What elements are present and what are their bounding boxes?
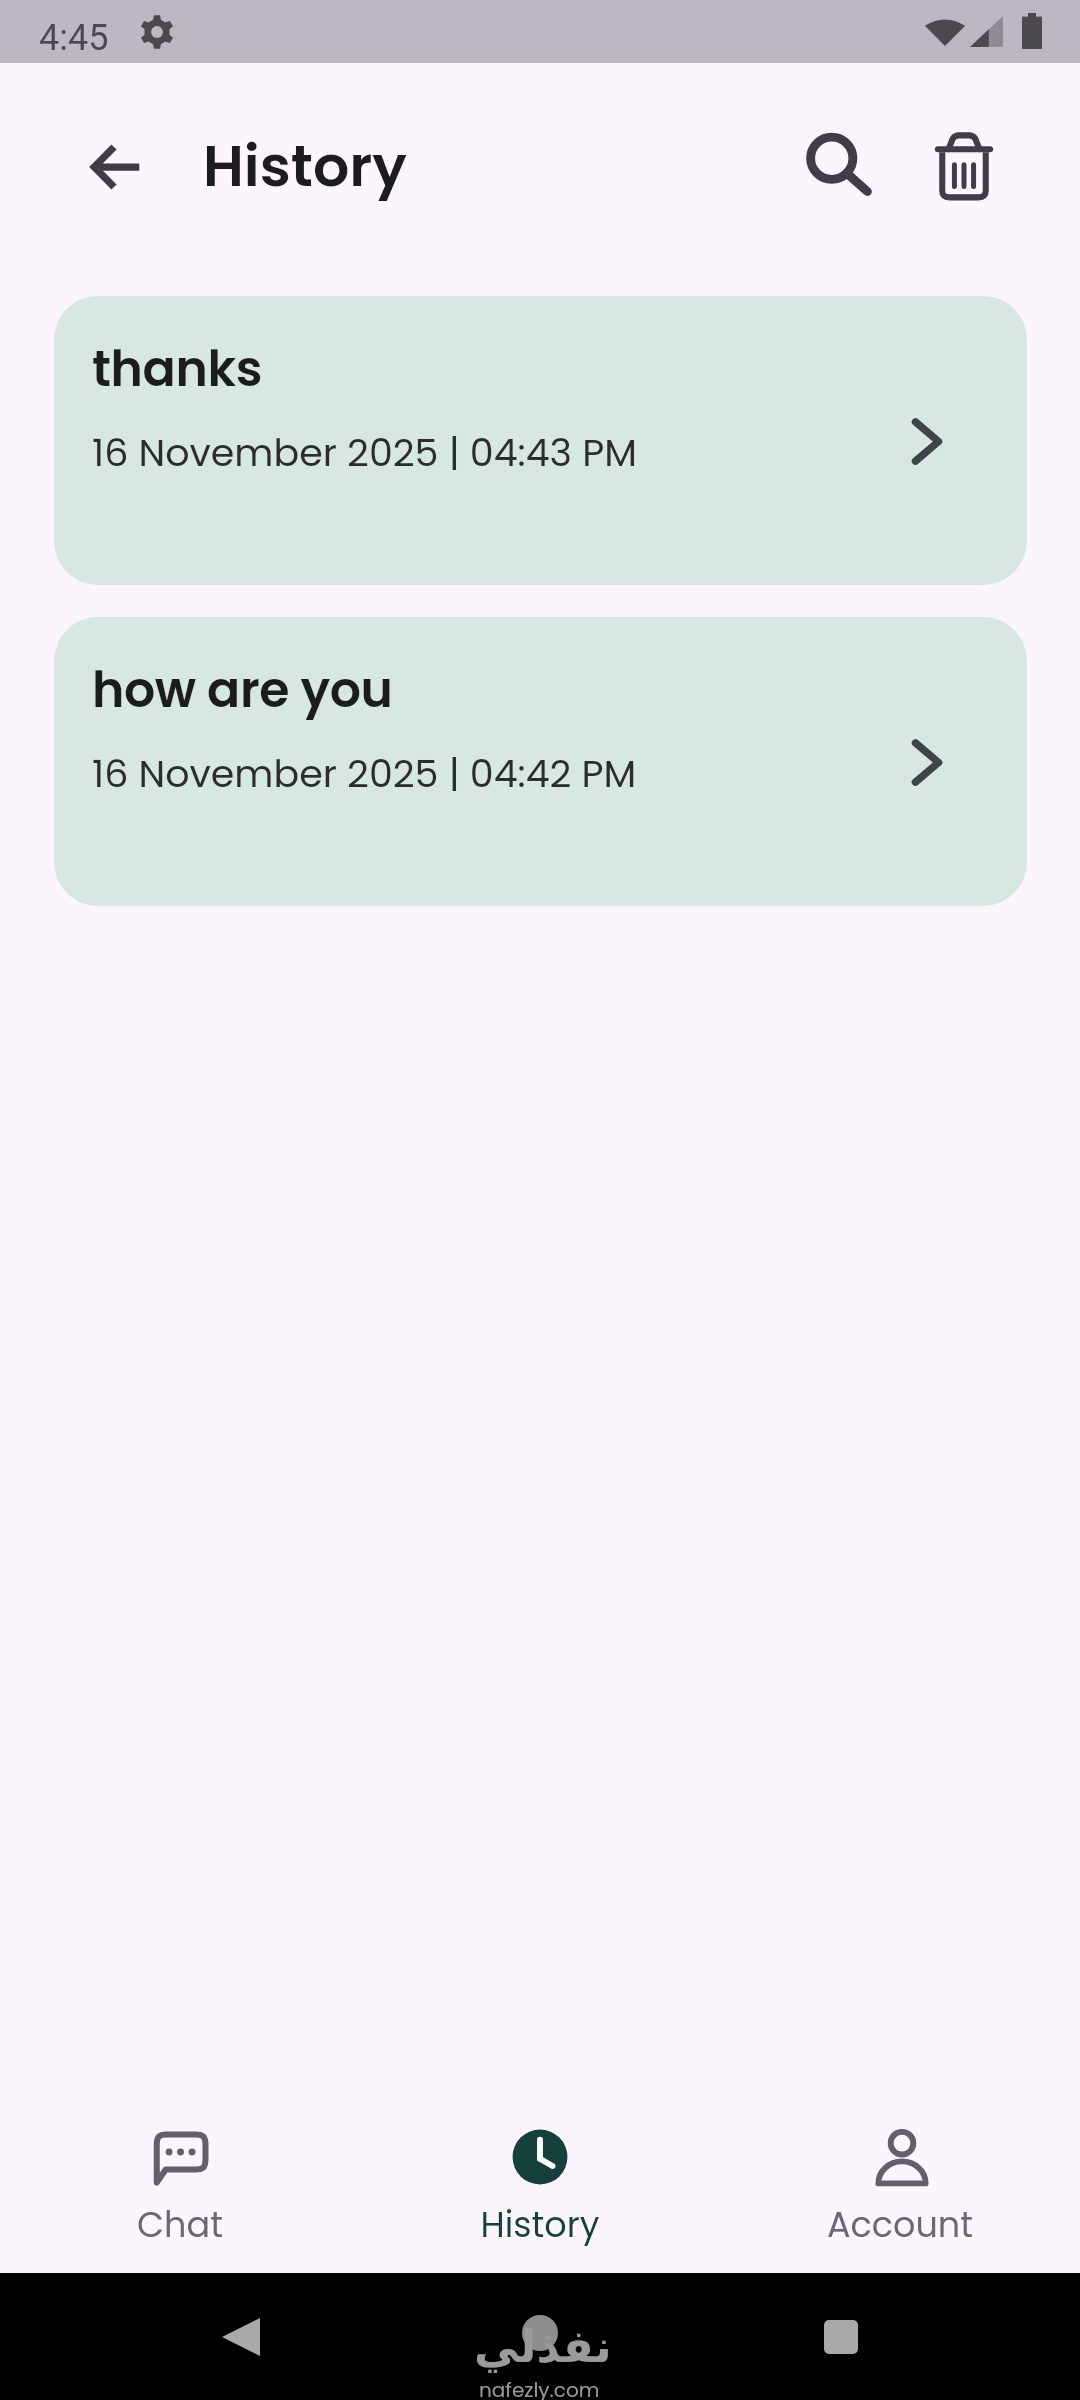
staticText: Account xyxy=(720,2200,1080,2249)
button[interactable]: Chat xyxy=(0,2108,360,2268)
button[interactable]: Account xyxy=(720,2108,1080,2268)
button[interactable]: thanks xyxy=(54,296,1027,585)
button[interactable]: Search xyxy=(790,119,888,217)
staticText: نفذلي xyxy=(474,2320,612,2372)
staticText: Chat xyxy=(0,2200,360,2249)
button[interactable]: how are you xyxy=(54,617,1027,906)
staticText: 4:45 xyxy=(39,17,109,59)
staticText: 16 November 2025 | 04:43 PM xyxy=(92,426,637,479)
button[interactable]: Back xyxy=(180,2276,302,2398)
staticText: History xyxy=(203,126,407,206)
button[interactable]: History xyxy=(360,2108,720,2268)
button[interactable]: Back xyxy=(70,121,161,212)
staticText: History xyxy=(360,2200,720,2249)
staticText: 16 November 2025 | 04:42 PM xyxy=(92,747,637,800)
button[interactable]: Recent apps xyxy=(780,2276,902,2398)
staticText: how are you xyxy=(92,656,393,725)
button[interactable]: Delete history xyxy=(916,118,1012,214)
staticText: nafezly.com xyxy=(479,2376,600,2400)
staticText: thanks xyxy=(92,335,262,404)
